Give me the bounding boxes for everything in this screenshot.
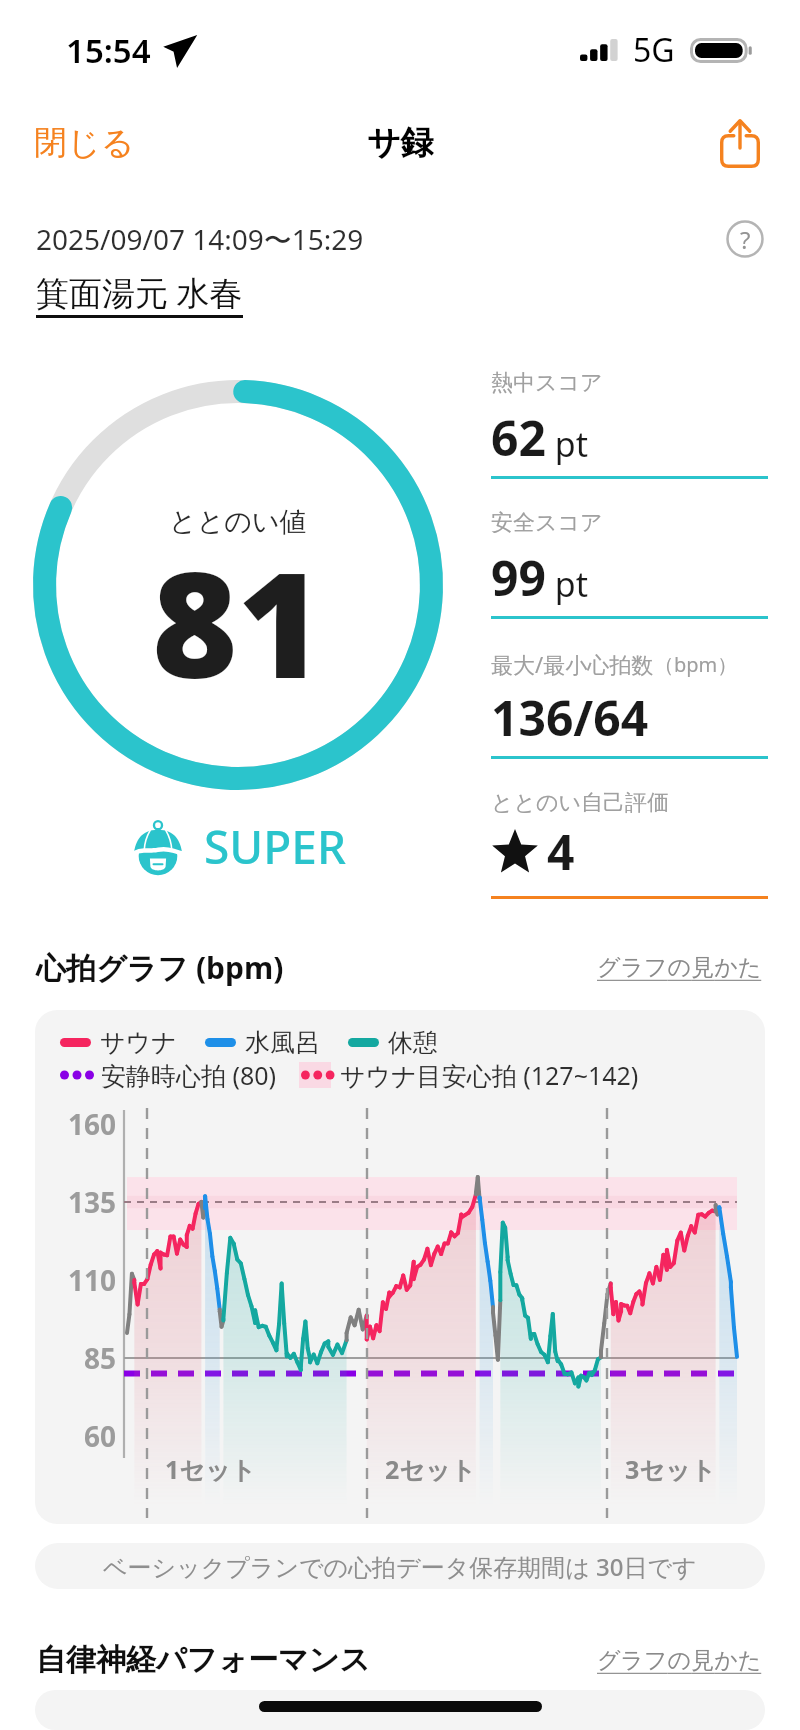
staticText: 3セット	[625, 1452, 717, 1486]
staticText: 160	[68, 1105, 117, 1143]
staticText: 15:54	[66, 28, 151, 73]
staticText: サウナ目安心拍 (127~142)	[340, 1058, 639, 1092]
staticText: 136/64	[491, 685, 649, 750]
staticText: pt	[546, 421, 589, 467]
staticText: 自律神経パフォーマンス	[36, 1641, 371, 1679]
staticText: 閉じる	[34, 122, 135, 164]
button[interactable]: ととのい値 81	[33, 380, 443, 790]
staticText: 最大/最小心拍数	[491, 649, 654, 679]
staticText: ?	[740, 223, 751, 256]
staticText: サ録	[367, 122, 434, 164]
staticText: 110	[68, 1261, 117, 1299]
staticText: SUPER	[204, 815, 347, 878]
staticText: 135	[68, 1183, 117, 1221]
button[interactable]: グラフの見かた	[595, 1642, 764, 1679]
staticText: 85	[84, 1339, 117, 1377]
staticText: 熱中スコア	[491, 369, 603, 397]
staticText: 休憩	[388, 1027, 438, 1058]
staticText: 5G	[633, 28, 675, 72]
button[interactable]: Share	[690, 108, 800, 178]
button[interactable]: ととのい自己評価	[491, 789, 768, 929]
staticText: 81	[152, 522, 324, 721]
staticText: グラフの見かた	[597, 953, 762, 982]
staticText: pt	[546, 561, 589, 607]
staticText: ととのい自己評価	[491, 789, 670, 817]
button[interactable]: SUPER	[124, 814, 353, 878]
staticText: 60	[84, 1417, 117, 1455]
staticText: 62	[491, 405, 546, 470]
staticText: 箕面湯元 水春	[36, 270, 243, 315]
staticText: 安静時心拍 (80)	[101, 1058, 277, 1092]
staticText: ベーシックプランでの心拍データ保存期間は 30日です	[103, 1550, 697, 1583]
button[interactable]: 熱中スコア	[491, 369, 768, 509]
staticText: （bpm）	[654, 651, 738, 678]
staticText: 2セット	[385, 1452, 477, 1486]
staticText: 4	[547, 819, 575, 884]
staticText: 水風呂	[245, 1027, 320, 1058]
button[interactable]: Help	[726, 220, 764, 258]
staticText: 99	[491, 545, 546, 610]
button[interactable]: 箕面湯元 水春	[36, 270, 243, 318]
staticText: 安全スコア	[491, 509, 603, 537]
button[interactable]: グラフの見かた	[595, 949, 764, 986]
staticText: 心拍グラフ (bpm)	[36, 947, 284, 988]
button[interactable]: 最大/最小心拍数	[491, 649, 768, 789]
staticText: 1セット	[165, 1452, 257, 1486]
staticText: グラフの見かた	[597, 1646, 762, 1675]
button[interactable]: 安全スコア	[491, 509, 768, 649]
staticText: サウナ	[100, 1027, 177, 1058]
button[interactable]: 閉じる	[0, 108, 169, 178]
staticText: 2025/09/07 14:09〜15:29	[36, 220, 364, 258]
staticText: ととのい値	[169, 505, 307, 539]
